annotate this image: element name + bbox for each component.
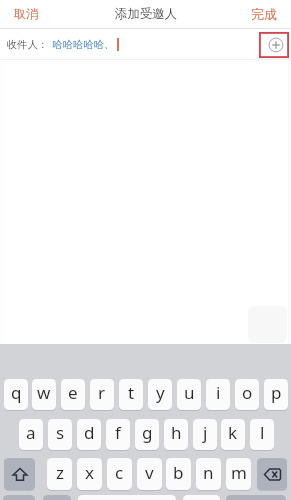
button[interactable]: Period (183, 495, 220, 500)
button[interactable]: q (4, 379, 28, 410)
staticText: h (171, 421, 182, 444)
button[interactable]: d (77, 419, 101, 450)
staticText: o (242, 381, 253, 404)
button[interactable]: u (177, 379, 201, 410)
button[interactable]: Add recipient (266, 35, 286, 55)
button[interactable]: z (47, 458, 72, 490)
staticText: 添加受邀人 (115, 6, 177, 22)
button[interactable]: p (264, 379, 288, 410)
button[interactable]: i (206, 379, 230, 410)
staticText: x (85, 461, 94, 484)
button[interactable]: Emoji (43, 495, 71, 500)
button[interactable]: Return (226, 495, 286, 500)
button[interactable]: o (235, 379, 259, 410)
button[interactable]: c (107, 458, 132, 490)
staticText: s (56, 421, 65, 444)
staticText: l (260, 421, 265, 444)
staticText: 收件人： (7, 38, 48, 51)
staticText: n (203, 461, 214, 484)
button[interactable]: v (137, 458, 162, 490)
staticText: e (68, 381, 78, 404)
staticText: f (115, 421, 121, 444)
staticText: j (203, 421, 208, 444)
staticText: i (216, 381, 221, 404)
button[interactable]: Numbers (3, 495, 35, 500)
staticText: z (56, 461, 64, 484)
button[interactable]: 完成 (246, 1, 282, 27)
button[interactable]: h (164, 419, 188, 450)
button[interactable]: l (250, 419, 274, 450)
button[interactable]: k (221, 419, 245, 450)
staticText: 完成 (251, 6, 277, 22)
button[interactable]: j (193, 419, 217, 450)
staticText: u (184, 381, 195, 404)
staticText: 取消 (14, 6, 39, 21)
button[interactable]: s (48, 419, 72, 450)
button[interactable]: w (32, 379, 56, 410)
staticText: p (271, 381, 282, 404)
button[interactable]: Backspace (257, 458, 287, 490)
staticText: g (142, 421, 153, 444)
staticText: v (145, 461, 154, 484)
staticText: t (128, 381, 135, 404)
staticText: r (98, 381, 106, 404)
button[interactable]: a (19, 419, 43, 450)
button[interactable]: x (77, 458, 102, 490)
staticText: c (115, 461, 124, 484)
staticText: b (173, 461, 184, 484)
staticText: k (228, 421, 238, 444)
staticText: q (11, 381, 22, 404)
button[interactable]: n (196, 458, 221, 490)
button[interactable]: Shift (4, 458, 35, 490)
button[interactable]: Space (78, 495, 176, 500)
button[interactable]: g (135, 419, 159, 450)
button[interactable]: b (166, 458, 191, 490)
button[interactable]: t (119, 379, 143, 410)
staticText: 哈哈哈哈哈、 (52, 38, 115, 51)
button[interactable]: f (106, 419, 130, 450)
staticText: y (156, 381, 165, 404)
button[interactable]: y (148, 379, 172, 410)
button[interactable]: m (226, 458, 251, 490)
staticText: w (37, 381, 51, 404)
button[interactable]: r (90, 379, 114, 410)
button[interactable]: e (61, 379, 85, 410)
staticText: a (26, 421, 36, 444)
button[interactable]: 取消 (9, 1, 44, 26)
staticText: m (231, 461, 247, 484)
staticText: d (84, 421, 95, 444)
